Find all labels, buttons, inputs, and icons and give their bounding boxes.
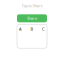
button[interactable]: Share [17, 14, 47, 22]
staticText: C [42, 26, 45, 32]
staticText: B [30, 26, 33, 32]
staticText: Share [27, 16, 37, 21]
staticText: Tap to Share [21, 3, 42, 8]
staticText: A [19, 26, 22, 32]
